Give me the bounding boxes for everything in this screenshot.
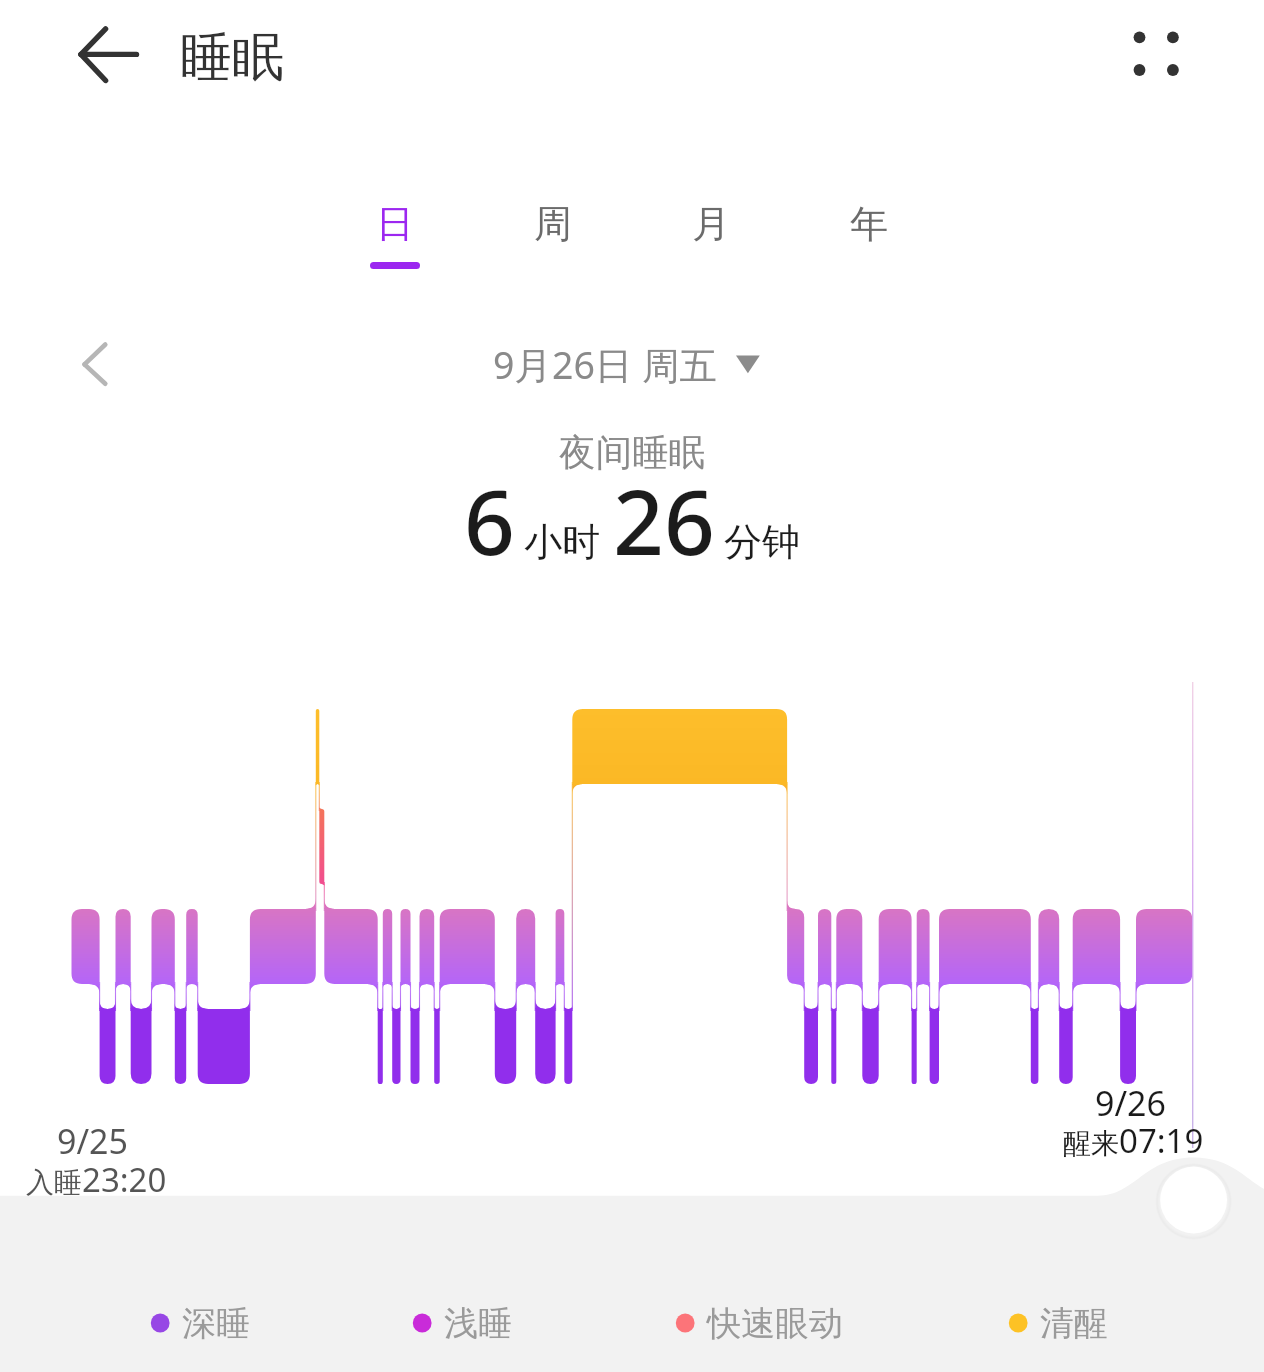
button[interactable]: 9月26日 周五 (0, 336, 1259, 392)
staticText: 周 (534, 200, 572, 248)
staticText: 9月26日 周五 (493, 339, 718, 390)
staticText: 醒来 (1063, 1126, 1119, 1161)
button[interactable]: More options (1114, 14, 1198, 98)
button[interactable]: 日 (341, 200, 449, 290)
button[interactable]: 清醒 (1008, 1294, 1108, 1352)
staticText: 日 (376, 200, 414, 248)
staticText: 入睡 (26, 1165, 82, 1200)
button[interactable]: 浅睡 (412, 1294, 512, 1352)
staticText: 26 (613, 460, 715, 581)
staticText: 快速眼动 (707, 1302, 843, 1345)
staticText: 浅睡 (444, 1302, 512, 1345)
staticText: 夜间睡眠 (559, 430, 705, 476)
staticText: 分钟 (724, 518, 800, 566)
staticText: 小时 (524, 518, 600, 566)
staticText: 月 (692, 200, 730, 248)
button[interactable]: 周 (499, 200, 607, 290)
button[interactable]: Back (60, 18, 136, 94)
button[interactable]: 年 (815, 200, 923, 290)
button[interactable]: 快速眼动 (675, 1294, 843, 1352)
button[interactable]: Add record (1160, 1167, 1227, 1234)
staticText: 23:20 (82, 1157, 167, 1202)
button[interactable]: Previous day (68, 332, 138, 402)
staticText: 6 (464, 460, 515, 581)
staticText: 睡眠 (180, 25, 284, 91)
staticText: 07:19 (1119, 1118, 1204, 1163)
button[interactable]: 月 (657, 200, 765, 290)
staticText: 清醒 (1040, 1302, 1108, 1345)
staticText: 9/25 (57, 1118, 128, 1164)
staticText: 年 (850, 200, 888, 248)
staticText: 深睡 (182, 1302, 250, 1345)
button[interactable]: 深睡 (150, 1294, 250, 1352)
staticText: 9/26 (1095, 1080, 1166, 1126)
